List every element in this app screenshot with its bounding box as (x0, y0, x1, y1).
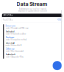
staticText: Realtime ingest across four regional edg… (17, 8, 46, 12)
staticText: Batch upload (6, 31, 15, 32)
button[interactable]: Sensor sync (4, 24, 62, 30)
staticText: Sensor sync (6, 25, 16, 27)
staticText: node-07 snapshot verified (6, 39, 27, 41)
staticText: LIVE · 1.24 GB/s (3, 14, 13, 16)
staticText: node-04 committed 2.4M rows (6, 27, 29, 29)
staticText: node-01 flushed to cold tier (6, 33, 27, 35)
staticText: +12% (57, 19, 61, 21)
staticText: node-02 shard 3 of 8 (6, 44, 22, 46)
staticText: Checkpoint (6, 37, 14, 38)
button[interactable]: Batch upload (4, 30, 62, 36)
staticText: Peak 2.1 GB/s (3, 19, 13, 21)
button[interactable]: Index rebuild (4, 41, 62, 47)
staticText: Data Stream (16, 1, 47, 7)
staticText: Index rebuild (6, 42, 15, 44)
button[interactable]: Checkpoint (4, 36, 62, 41)
staticText: Cold storage (6, 48, 15, 50)
staticText: node-09 archive sealed (6, 50, 24, 52)
staticText: node-03 lag under 40ms (6, 56, 24, 58)
staticText: Replica check (6, 54, 16, 55)
button[interactable]: New capture (53, 61, 62, 70)
button[interactable]: Cold storage (4, 47, 62, 53)
button[interactable]: Replica check (4, 53, 62, 59)
